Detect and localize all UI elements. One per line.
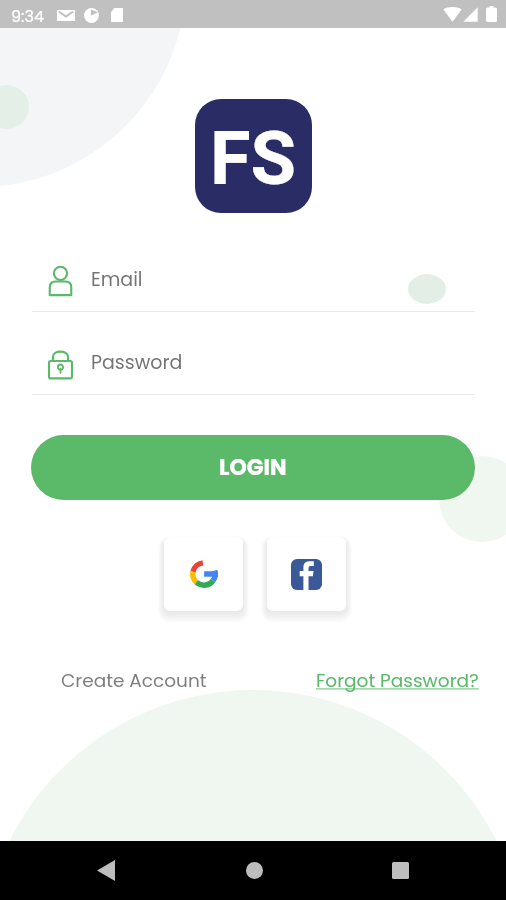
staticText: FS (210, 115, 297, 202)
button[interactable]: LOGIN (31, 435, 475, 500)
button[interactable]: Forgot Password? (310, 664, 485, 698)
staticText: Create Account (61, 668, 207, 694)
button[interactable]: Sign in with Google (164, 537, 243, 611)
staticText: Forgot Password? (316, 668, 479, 694)
button[interactable]: Back (76, 841, 136, 900)
staticText: Email (91, 266, 143, 293)
staticText: LOGIN (219, 452, 287, 483)
button[interactable]: Recent apps (370, 841, 430, 900)
staticText: 9:34 (11, 5, 44, 27)
button[interactable]: Create Account (55, 664, 213, 698)
button[interactable]: Home (224, 841, 284, 900)
button[interactable]: Sign in with Facebook (267, 537, 346, 611)
staticText: Password (91, 349, 183, 376)
